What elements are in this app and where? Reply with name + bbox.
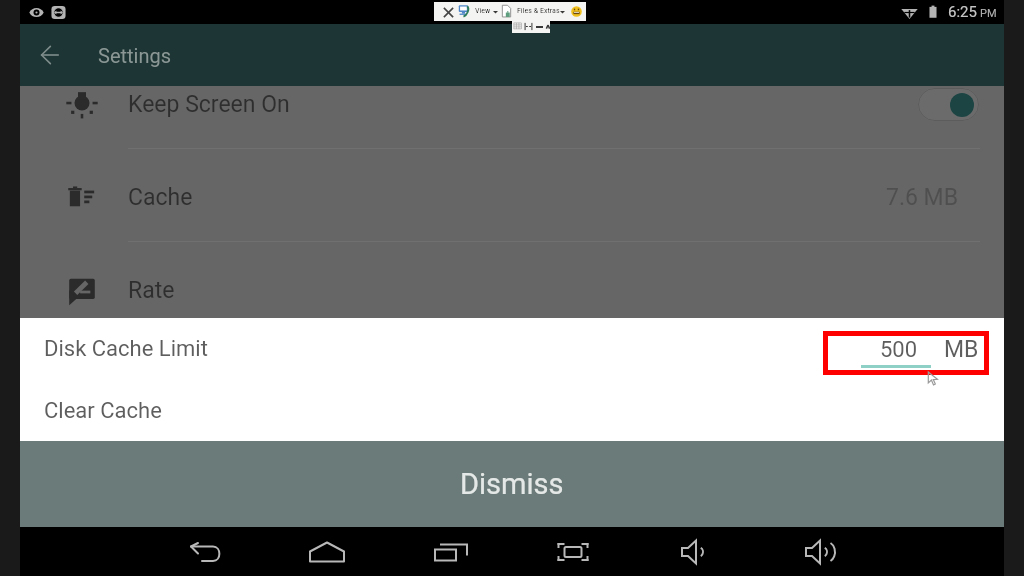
button[interactable]: Disk Cache Limit	[20, 318, 1004, 380]
button[interactable]: Cache	[20, 151, 1004, 243]
staticText: Files & Extras	[517, 6, 560, 15]
button[interactable]: Rate	[20, 244, 1004, 336]
button[interactable]: Recent apps	[429, 530, 473, 574]
button[interactable]: Volume up	[796, 530, 840, 574]
other: Screen visible	[29, 5, 44, 20]
button[interactable]: 500	[823, 331, 989, 375]
staticText: Disk Cache Limit	[44, 336, 208, 362]
staticText: MB	[944, 336, 979, 363]
staticText: Clear Cache	[44, 398, 162, 424]
button[interactable]: Screenshot	[551, 530, 595, 574]
staticText: 500	[880, 337, 918, 363]
button[interactable]: Navigate up	[26, 31, 74, 79]
staticText: Cache	[128, 184, 193, 211]
button[interactable]: Dismiss	[20, 441, 1004, 527]
staticText: PM	[980, 7, 997, 20]
staticText: 6:25	[948, 3, 977, 21]
staticText: Keep Screen On	[128, 91, 290, 118]
other: Resize	[51, 5, 66, 20]
staticText: 7.6 MB	[886, 184, 959, 211]
button[interactable]: Clear Cache	[20, 380, 1004, 441]
button[interactable]: Keep Screen On	[20, 58, 1004, 150]
staticText: View	[475, 6, 491, 15]
button[interactable]: Home	[305, 530, 349, 574]
staticText: Settings	[98, 44, 172, 67]
staticText: Dismiss	[460, 467, 564, 501]
staticText: Rate	[128, 277, 175, 304]
button[interactable]: Keep Screen On toggle	[918, 88, 979, 121]
button[interactable]: Volume down	[672, 530, 716, 574]
button[interactable]: Back	[183, 530, 227, 574]
